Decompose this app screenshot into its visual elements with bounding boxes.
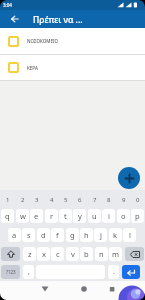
staticText: 3:04 bbox=[3, 2, 12, 8]
button[interactable]: 2 bbox=[16, 195, 29, 205]
staticText: q bbox=[5, 211, 10, 221]
button[interactable]: j bbox=[94, 228, 107, 242]
staticText: 4 bbox=[50, 196, 54, 204]
staticText: ΝΟΣΟΚΟΜΕΙΟ bbox=[27, 38, 59, 44]
button[interactable]: f bbox=[51, 228, 64, 242]
button[interactable]: a bbox=[8, 228, 21, 242]
button[interactable]: d bbox=[37, 228, 50, 242]
button[interactable] bbox=[118, 167, 140, 189]
button[interactable] bbox=[125, 247, 144, 261]
button[interactable]: m bbox=[109, 247, 122, 261]
button[interactable]: v bbox=[66, 247, 79, 261]
button[interactable] bbox=[122, 265, 140, 279]
button[interactable]: y bbox=[73, 209, 86, 223]
button[interactable]: i bbox=[102, 209, 115, 223]
button[interactable]: . bbox=[108, 265, 119, 279]
staticText: m bbox=[112, 249, 120, 259]
button[interactable]: c bbox=[51, 247, 64, 261]
button[interactable]: ?123 bbox=[1, 265, 20, 279]
staticText: i bbox=[108, 211, 110, 221]
staticText: ΚΕΡΑ bbox=[27, 65, 39, 71]
button[interactable]: z bbox=[23, 247, 36, 261]
button[interactable]: p bbox=[131, 209, 144, 223]
button[interactable]: e bbox=[30, 209, 43, 223]
staticText: u bbox=[92, 211, 97, 221]
staticText: z bbox=[28, 249, 32, 259]
button[interactable]: q bbox=[1, 209, 14, 223]
staticText: v bbox=[71, 249, 75, 259]
button[interactable]: 8 bbox=[102, 195, 115, 205]
button[interactable]: 4 bbox=[45, 195, 58, 205]
button[interactable] bbox=[118, 285, 145, 300]
staticText: Πρέπει να ... bbox=[33, 14, 83, 26]
staticText: 7 bbox=[93, 196, 97, 204]
staticText: a bbox=[12, 230, 17, 240]
button[interactable]: , bbox=[23, 265, 34, 279]
button[interactable]: k bbox=[109, 228, 122, 242]
staticText: 2 bbox=[21, 196, 25, 204]
staticText: b bbox=[84, 249, 89, 259]
staticText: s bbox=[27, 230, 31, 240]
button[interactable]: o bbox=[117, 209, 130, 223]
button[interactable]: w bbox=[16, 209, 29, 223]
button[interactable]: b bbox=[80, 247, 93, 261]
staticText: g bbox=[70, 230, 75, 240]
staticText: 1 bbox=[6, 196, 10, 204]
button[interactable]: 7 bbox=[88, 195, 101, 205]
staticText: f bbox=[56, 230, 59, 240]
staticText: , bbox=[28, 267, 30, 277]
staticText: j bbox=[100, 230, 102, 240]
button[interactable]: 1 bbox=[1, 195, 14, 205]
staticText: h bbox=[84, 230, 89, 240]
button[interactable]: l bbox=[123, 228, 136, 242]
staticText: n bbox=[99, 249, 104, 259]
button[interactable]: g bbox=[66, 228, 79, 242]
button[interactable]: 3 bbox=[30, 195, 43, 205]
staticText: r bbox=[50, 211, 54, 221]
button[interactable]: s bbox=[22, 228, 35, 242]
staticText: l bbox=[129, 230, 131, 240]
button[interactable]: ΝΟΣΟΚΟΜΕΙΟ bbox=[0, 28, 145, 54]
staticText: t bbox=[64, 211, 67, 221]
staticText: w bbox=[20, 211, 26, 221]
button[interactable]: n bbox=[95, 247, 108, 261]
staticText: y bbox=[78, 211, 82, 221]
staticText: x bbox=[42, 249, 46, 259]
button[interactable]: u bbox=[88, 209, 101, 223]
staticText: . bbox=[113, 267, 115, 277]
staticText: e bbox=[34, 211, 39, 221]
button[interactable] bbox=[11, 15, 19, 23]
staticText: d bbox=[41, 230, 46, 240]
button[interactable]: 0 bbox=[131, 195, 144, 205]
button[interactable]: h bbox=[80, 228, 93, 242]
button[interactable] bbox=[1, 247, 20, 261]
button[interactable]: r bbox=[45, 209, 58, 223]
staticText: 0 bbox=[136, 196, 140, 204]
staticText: c bbox=[56, 249, 60, 259]
staticText: 9 bbox=[122, 196, 126, 204]
button[interactable]: 9 bbox=[117, 195, 130, 205]
staticText: 8 bbox=[107, 196, 111, 204]
button[interactable]: t bbox=[59, 209, 72, 223]
button[interactable]: x bbox=[37, 247, 50, 261]
button[interactable]: 5 bbox=[59, 195, 72, 205]
staticText: o bbox=[121, 211, 126, 221]
staticText: 3 bbox=[35, 196, 39, 204]
staticText: ?123 bbox=[6, 269, 16, 275]
staticText: p bbox=[135, 211, 140, 221]
button[interactable]: 6 bbox=[73, 195, 86, 205]
staticText: k bbox=[113, 230, 118, 240]
staticText: 5 bbox=[64, 196, 68, 204]
staticText: 6 bbox=[78, 196, 82, 204]
button[interactable]: ΚΕΡΑ bbox=[0, 55, 145, 80]
